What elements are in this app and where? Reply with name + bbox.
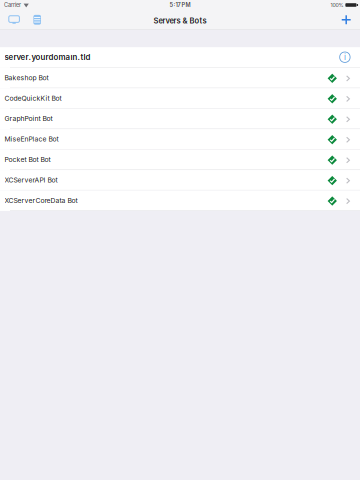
button[interactable]: XCServerCoreData Bot	[0, 190, 360, 211]
staticText: CodeQuickKit Bot	[4, 94, 61, 102]
button[interactable]: MiseEnPlace Bot	[0, 129, 360, 150]
button[interactable]: Bakeshop Bot	[0, 68, 360, 88]
staticText: Bakeshop Bot	[4, 74, 48, 82]
button[interactable]: Servers	[0, 13, 26, 27]
staticText: 100%	[330, 2, 343, 8]
button[interactable]: XCServerAPI Bot	[0, 170, 360, 191]
button[interactable]: CodeQuickKit Bot	[0, 88, 360, 109]
staticText: GraphPoint Bot	[4, 114, 52, 123]
button[interactable]: Server info	[340, 52, 350, 62]
staticText: server.yourdomain.tld	[4, 52, 90, 62]
button[interactable]: Bots	[26, 12, 48, 28]
staticText: MiseEnPlace Bot	[4, 135, 58, 143]
staticText: i	[344, 52, 346, 62]
button[interactable]: Add	[337, 11, 360, 28]
staticText: Pocket Bot Bot	[4, 155, 50, 164]
staticText: XCServerAPI Bot	[4, 176, 57, 184]
staticText: XCServerCoreData Bot	[4, 196, 77, 204]
button[interactable]: Pocket Bot Bot	[0, 150, 360, 170]
staticText: Carrier	[4, 2, 21, 8]
button[interactable]: GraphPoint Bot	[0, 109, 360, 129]
staticText: Servers & Bots	[153, 16, 206, 25]
staticText: 5:17 PM	[169, 2, 190, 8]
